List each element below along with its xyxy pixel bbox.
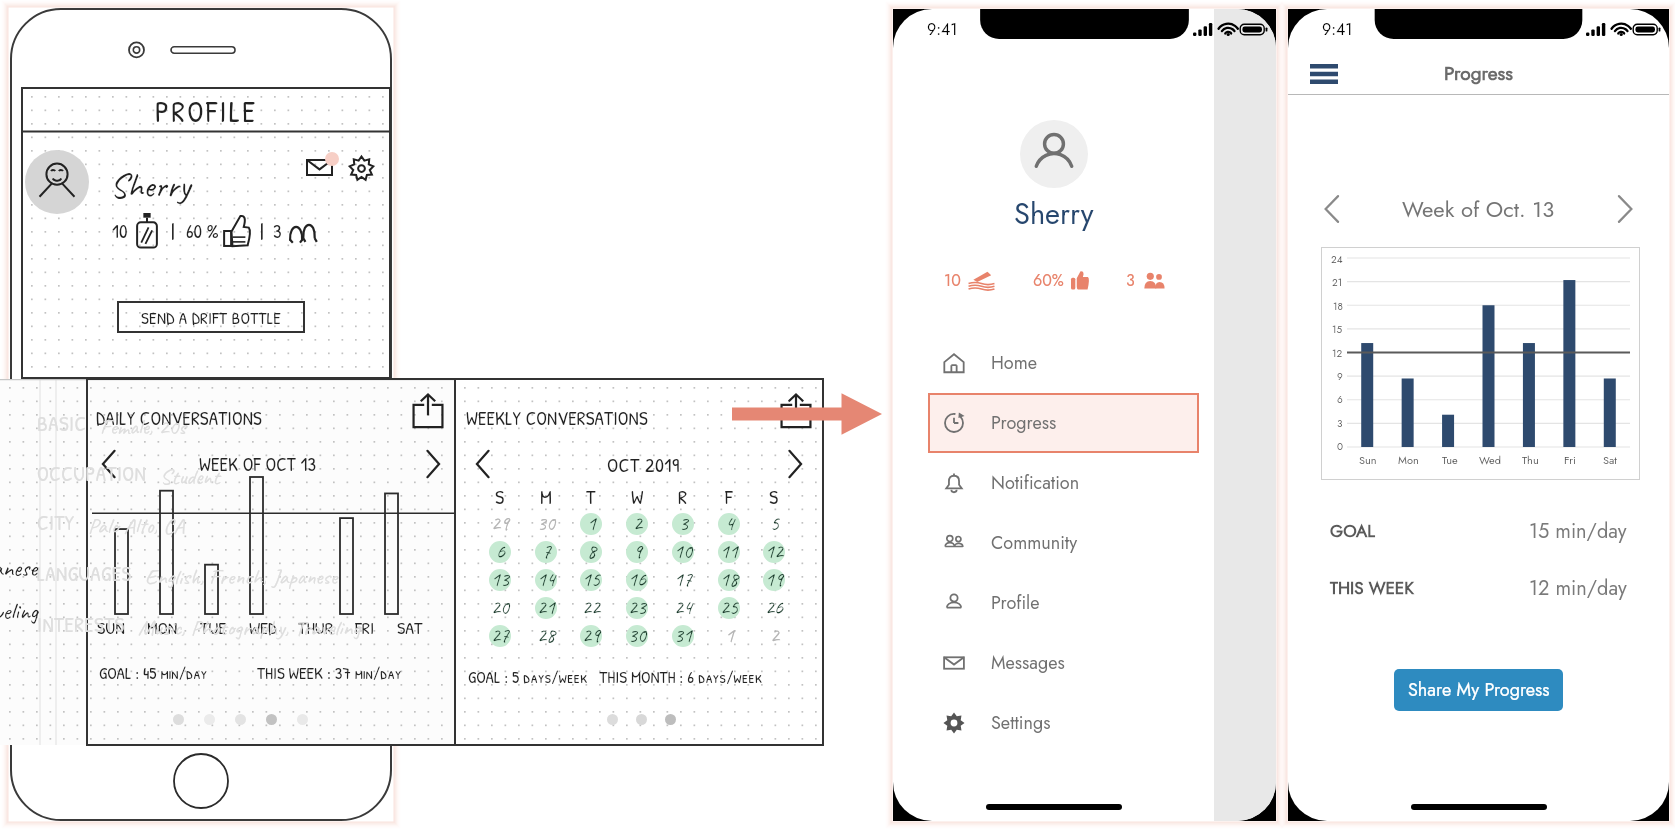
staticText: 22: [582, 595, 600, 620]
staticText: 2: [770, 623, 779, 648]
staticText: 30: [537, 511, 555, 536]
staticText: WEEKLY CONVERSATIONS: [466, 405, 648, 431]
staticText: 15 min/day: [1529, 517, 1627, 546]
staticText: 12 min/day: [1529, 574, 1627, 603]
button[interactable]: Settings: [928, 693, 1199, 753]
button[interactable]: Profile: [928, 573, 1199, 633]
staticText: 20: [491, 595, 509, 620]
staticText: OCCUPATION: [37, 459, 147, 487]
staticText: WED: [249, 615, 277, 639]
staticText: Week of Oct. 13: [1402, 193, 1555, 225]
button[interactable]: Notification: [928, 453, 1199, 513]
staticText: FRI: [355, 615, 375, 639]
button[interactable]: Share My Progress: [1394, 669, 1563, 711]
staticText: LANGUAGES: [37, 559, 132, 587]
staticText: 9:41: [1322, 18, 1353, 41]
staticText: 0: [1337, 439, 1343, 453]
staticText: Student: [160, 463, 220, 491]
staticText: Music, Photography, Traveling: [138, 614, 361, 642]
staticText: 60%: [1033, 269, 1064, 292]
staticText: 5: [770, 511, 779, 536]
staticText: 3: [679, 511, 688, 536]
staticText: 29: [491, 511, 509, 536]
staticText: 23: [628, 595, 646, 620]
staticText: 16: [628, 567, 646, 592]
staticText: Share My Progress: [1408, 677, 1550, 703]
staticText: Fri: [1564, 452, 1576, 468]
staticText: 27: [491, 623, 509, 648]
staticText: 26: [765, 595, 783, 620]
staticText: Thu: [1522, 452, 1539, 468]
staticText: MON: [147, 615, 178, 639]
staticText: 9: [1337, 369, 1343, 383]
staticText: 18: [720, 567, 738, 592]
staticText: 30: [628, 623, 646, 648]
staticText: 10: [674, 539, 692, 564]
staticText: 7: [542, 539, 551, 564]
button[interactable]: SEND A DRIFT BOTTLE: [117, 301, 305, 333]
staticText: 11: [720, 539, 738, 564]
staticText: 18: [1333, 299, 1343, 313]
staticText: Settings: [991, 710, 1051, 736]
staticText: Sherry: [110, 164, 191, 207]
staticText: Sun: [1359, 452, 1377, 468]
staticText: Progress: [1444, 60, 1513, 87]
staticText: Female, 20s: [100, 413, 186, 441]
staticText: 8: [587, 539, 596, 564]
button[interactable]: Progress: [928, 393, 1199, 453]
staticText: 17: [674, 567, 692, 592]
staticText: Sat: [1603, 452, 1617, 468]
staticText: 25: [720, 595, 738, 620]
staticText: 14: [537, 567, 555, 592]
staticText: R: [678, 483, 688, 509]
staticText: 1: [725, 623, 734, 648]
staticText: 6: [1337, 392, 1343, 406]
staticText: |: [171, 216, 175, 246]
staticText: S: [495, 483, 505, 509]
staticText: 24: [674, 595, 692, 620]
staticText: OCT 2019: [607, 451, 680, 478]
staticText: 24: [1331, 252, 1343, 266]
staticText: Home: [991, 350, 1038, 376]
button[interactable]: Messages: [928, 633, 1199, 693]
staticText: Progress: [991, 410, 1057, 436]
staticText: Palo Alto, CA: [88, 512, 185, 540]
staticText: SUN: [97, 615, 125, 639]
button[interactable]: Menu: [1310, 57, 1344, 91]
other: Share: [777, 393, 815, 429]
button[interactable]: Previous week: [1314, 192, 1350, 226]
staticText: Tue: [1442, 452, 1458, 468]
staticText: 3: [1337, 416, 1343, 430]
staticText: WEEK OF OCT 13: [199, 451, 317, 477]
staticText: DAILY CONVERSATIONS: [96, 405, 262, 431]
staticText: 3: [1126, 269, 1135, 292]
staticText: Notification: [991, 470, 1080, 496]
staticText: 60 %: [186, 218, 219, 244]
staticText: CITY: [37, 508, 75, 536]
staticText: 28: [537, 623, 555, 648]
staticText: weling: [0, 596, 39, 626]
staticText: 1: [587, 511, 596, 536]
other: Share: [409, 393, 447, 429]
button[interactable]: Community: [928, 513, 1199, 573]
staticText: SEND A DRIFT BOTTLE: [141, 306, 282, 329]
staticText: T: [586, 483, 596, 509]
staticText: 9: [633, 539, 642, 564]
staticText: 10: [944, 269, 961, 292]
staticText: THIS WEEK : 37 min/day: [257, 661, 402, 684]
staticText: 15: [582, 567, 600, 592]
staticText: W: [631, 483, 644, 509]
button[interactable]: Next week: [1607, 192, 1643, 226]
staticText: 4: [725, 511, 734, 536]
staticText: 29: [582, 623, 600, 648]
staticText: 2: [633, 511, 642, 536]
staticText: Profile: [991, 590, 1040, 616]
staticText: |: [260, 216, 264, 246]
staticText: 9:41: [927, 18, 958, 41]
staticText: GOAL: [1330, 519, 1375, 544]
staticText: TUE: [200, 615, 227, 639]
staticText: THIS WEEK: [1330, 576, 1414, 601]
staticText: English, French, Japanese: [145, 563, 338, 591]
button[interactable]: Home: [928, 333, 1199, 393]
staticText: Messages: [991, 650, 1065, 676]
